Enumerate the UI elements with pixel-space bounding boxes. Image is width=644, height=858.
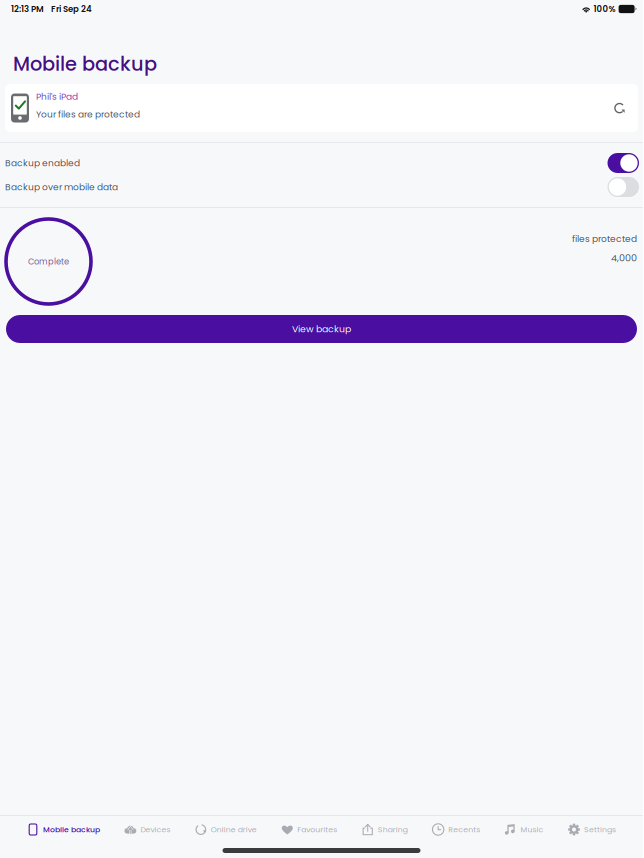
- button[interactable]: Devices: [124, 818, 170, 840]
- staticText: Online drive: [211, 824, 257, 835]
- button[interactable]: Online drive: [195, 818, 257, 840]
- button[interactable]: Backup over mobile data: [0, 175, 643, 199]
- button[interactable]: Music: [505, 818, 544, 840]
- staticText: Sharing: [378, 824, 408, 835]
- staticText: Backup over mobile data: [5, 181, 118, 193]
- button[interactable]: Favourites: [281, 818, 337, 840]
- staticText: Phil's iPad: [36, 90, 78, 103]
- staticText: files protected: [572, 232, 637, 245]
- staticText: 100%: [594, 3, 616, 15]
- staticText: Music: [521, 824, 544, 835]
- button[interactable]: Recents: [432, 818, 480, 840]
- staticText: Mobile backup: [43, 824, 100, 835]
- button[interactable]: Phil's iPad: [0, 84, 643, 132]
- staticText: Fri Sep 24: [51, 3, 92, 15]
- staticText: Backup enabled: [5, 157, 80, 169]
- button[interactable]: Sharing: [362, 818, 408, 840]
- staticText: View backup: [292, 322, 351, 336]
- staticText: Devices: [140, 824, 170, 835]
- staticText: 4,000: [611, 251, 637, 264]
- staticText: Recents: [448, 824, 480, 835]
- button[interactable]: Backup enabled: [0, 151, 643, 175]
- staticText: Complete: [28, 256, 69, 267]
- staticText: 12:13 PM: [11, 3, 44, 15]
- button[interactable]: Settings: [568, 818, 616, 840]
- staticText: Mobile backup: [13, 50, 157, 78]
- staticText: Settings: [584, 824, 616, 835]
- button[interactable]: View backup: [0, 315, 643, 343]
- staticText: Favourites: [297, 824, 337, 835]
- staticText: Your files are protected: [36, 108, 140, 121]
- button[interactable]: Mobile backup: [27, 818, 100, 840]
